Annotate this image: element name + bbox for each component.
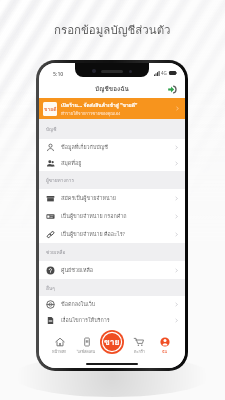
button[interactable]: ข้อมูลที่เกี่ยวกับบัญชี [39,139,185,155]
staticText: บัญชี [46,125,57,133]
staticText: เป็นผู้ขายจำหน่าย คืออะไร? [61,230,125,239]
button[interactable]: เงื่อนไขการให้บริการ [39,313,185,328]
staticText: 4G [161,70,167,76]
button[interactable]: ตะกร้า [126,337,152,355]
staticText: ไลฟ์สดเด่น [77,349,96,355]
button[interactable]: สมัครเป็นผู้ขายจำหน่าย [39,189,185,207]
button[interactable]: หน้าหลัก [46,337,73,355]
staticText: ขายดี [44,105,57,113]
button[interactable]: ขายดี [39,98,185,119]
staticText: ข้อมูลที่เกี่ยวกับบัญชี [61,143,108,152]
staticText: เปิดร้าน... จัดส่งสินค้าเข้าสู่ "ขายดี" [61,101,138,109]
staticText: ศูนย์ช่วยเหลือ [61,266,94,275]
staticText: ช่วยเหลือ [46,248,66,256]
staticText: สมุดที่อยู่ [61,159,82,168]
button[interactable]: ศูนย์ช่วยเหลือ [39,261,185,279]
button[interactable]: เป็นผู้ขายจำหน่าย กรอกคำถ [39,207,185,225]
button[interactable]: ฉัน [152,337,178,355]
button[interactable]: เป็นผู้ขายจำหน่าย คืออะไร? [39,225,185,243]
button[interactable]: สมุดที่อยู่ [39,155,185,171]
staticText: บัญชีของฉัน [95,84,129,94]
button[interactable]: ข้อตกลงในเว็บ [39,296,185,313]
staticText: สมัครเป็นผู้ขายจำหน่าย [61,194,116,203]
button[interactable]: Sell [100,330,124,354]
staticText: ผู้ขายทางการ [46,176,74,184]
staticText: ข้อตกลงในเว็บ [61,300,96,309]
staticText: ฉัน [162,349,168,355]
staticText: ตะกร้า [134,349,145,355]
staticText: อื่นๆ [46,284,55,292]
button[interactable]: Sign out [167,84,178,95]
staticText: ขาย [104,335,120,349]
staticText: เป็นผู้ขายจำหน่าย กรอกคำถ [61,212,127,221]
staticText: ทำรายได้จากการขายของคุณเอง [61,110,121,117]
staticText: กรอกข้อมูลบัญชีส่วนตัว [54,21,171,39]
button[interactable]: ไลฟ์สดเด่น [73,337,100,355]
staticText: เงื่อนไขการให้บริการ [61,316,110,325]
staticText: หน้าหลัก [52,349,67,355]
staticText: 5:10 [53,70,64,77]
